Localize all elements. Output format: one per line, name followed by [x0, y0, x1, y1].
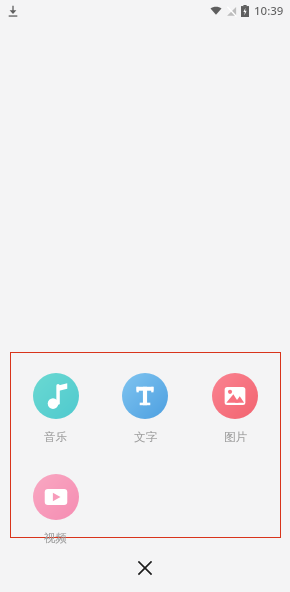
- staticText: 10:39: [254, 3, 284, 19]
- staticText: 文字: [134, 430, 157, 444]
- staticText: 音乐: [44, 430, 67, 444]
- button[interactable]: 视频: [11, 472, 100, 547]
- button[interactable]: 音乐: [11, 371, 100, 446]
- button[interactable]: Close: [123, 546, 167, 590]
- staticText: 视频: [44, 531, 67, 545]
- other: Download: [7, 5, 19, 17]
- staticText: 图片: [224, 430, 247, 444]
- button[interactable]: 图片: [190, 371, 280, 446]
- button[interactable]: 文字: [100, 371, 190, 446]
